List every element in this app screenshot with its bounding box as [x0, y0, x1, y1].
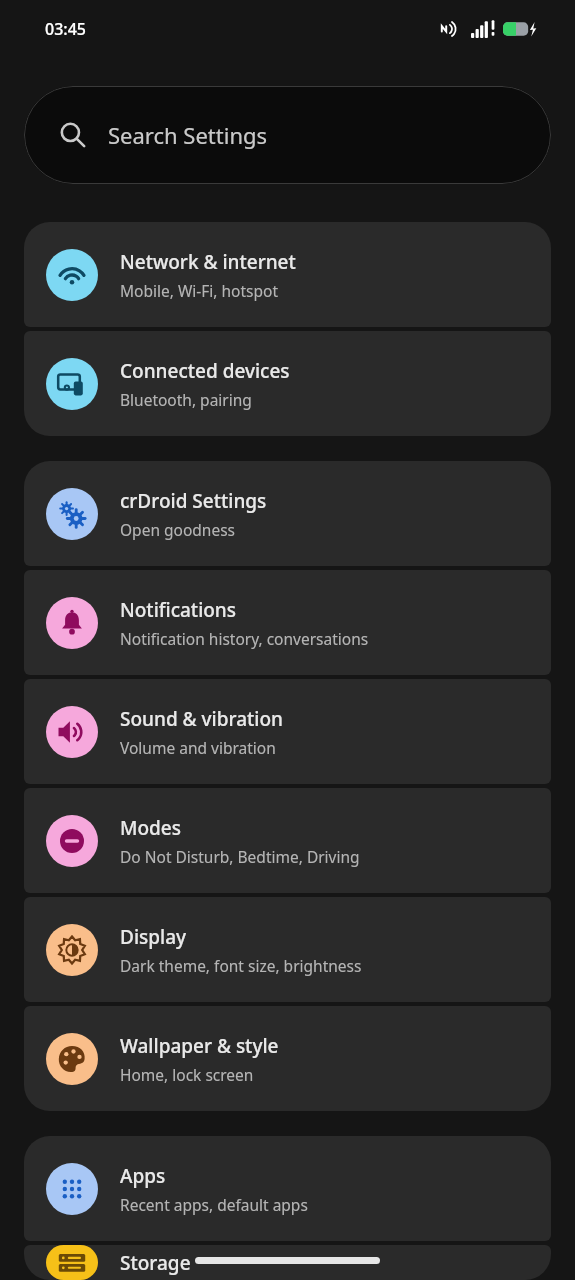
button[interactable]: Connected devices	[24, 331, 551, 436]
staticText: Home, lock screen	[120, 1064, 254, 1085]
staticText: Notification history, conversations	[120, 628, 369, 649]
button[interactable]: Search Settings	[24, 86, 551, 184]
button[interactable]: Notifications	[24, 570, 551, 675]
button[interactable]: Storage	[24, 1245, 551, 1280]
staticText: Modes	[120, 815, 181, 841]
staticText: Storage	[120, 1250, 191, 1276]
staticText: Search Settings	[108, 120, 268, 150]
staticText: Wallpaper & style	[120, 1033, 279, 1059]
button[interactable]: Modes	[24, 788, 551, 893]
staticText: Volume and vibration	[120, 737, 276, 758]
staticText: Recent apps, default apps	[120, 1194, 308, 1215]
staticText: Sound & vibration	[120, 706, 283, 732]
staticText: Do Not Disturb, Bedtime, Driving	[120, 846, 360, 867]
staticText: crDroid Settings	[120, 488, 267, 514]
staticText: Apps	[120, 1163, 166, 1189]
button[interactable]: Display	[24, 897, 551, 1002]
staticText: Mobile, Wi-Fi, hotspot	[120, 280, 279, 301]
button[interactable]: crDroid Settings	[24, 461, 551, 566]
staticText: Notifications	[120, 597, 237, 623]
button[interactable]: Sound & vibration	[24, 679, 551, 784]
staticText: 03:45	[45, 18, 86, 40]
button[interactable]: Network & internet	[24, 222, 551, 327]
staticText: Open goodness	[120, 519, 235, 540]
staticText: Connected devices	[120, 358, 290, 384]
staticText: Bluetooth, pairing	[120, 389, 252, 410]
button[interactable]: Apps	[24, 1136, 551, 1241]
staticText: Dark theme, font size, brightness	[120, 955, 362, 976]
staticText: Network & internet	[120, 249, 296, 275]
staticText: Display	[120, 924, 187, 950]
button[interactable]: Wallpaper & style	[24, 1006, 551, 1111]
